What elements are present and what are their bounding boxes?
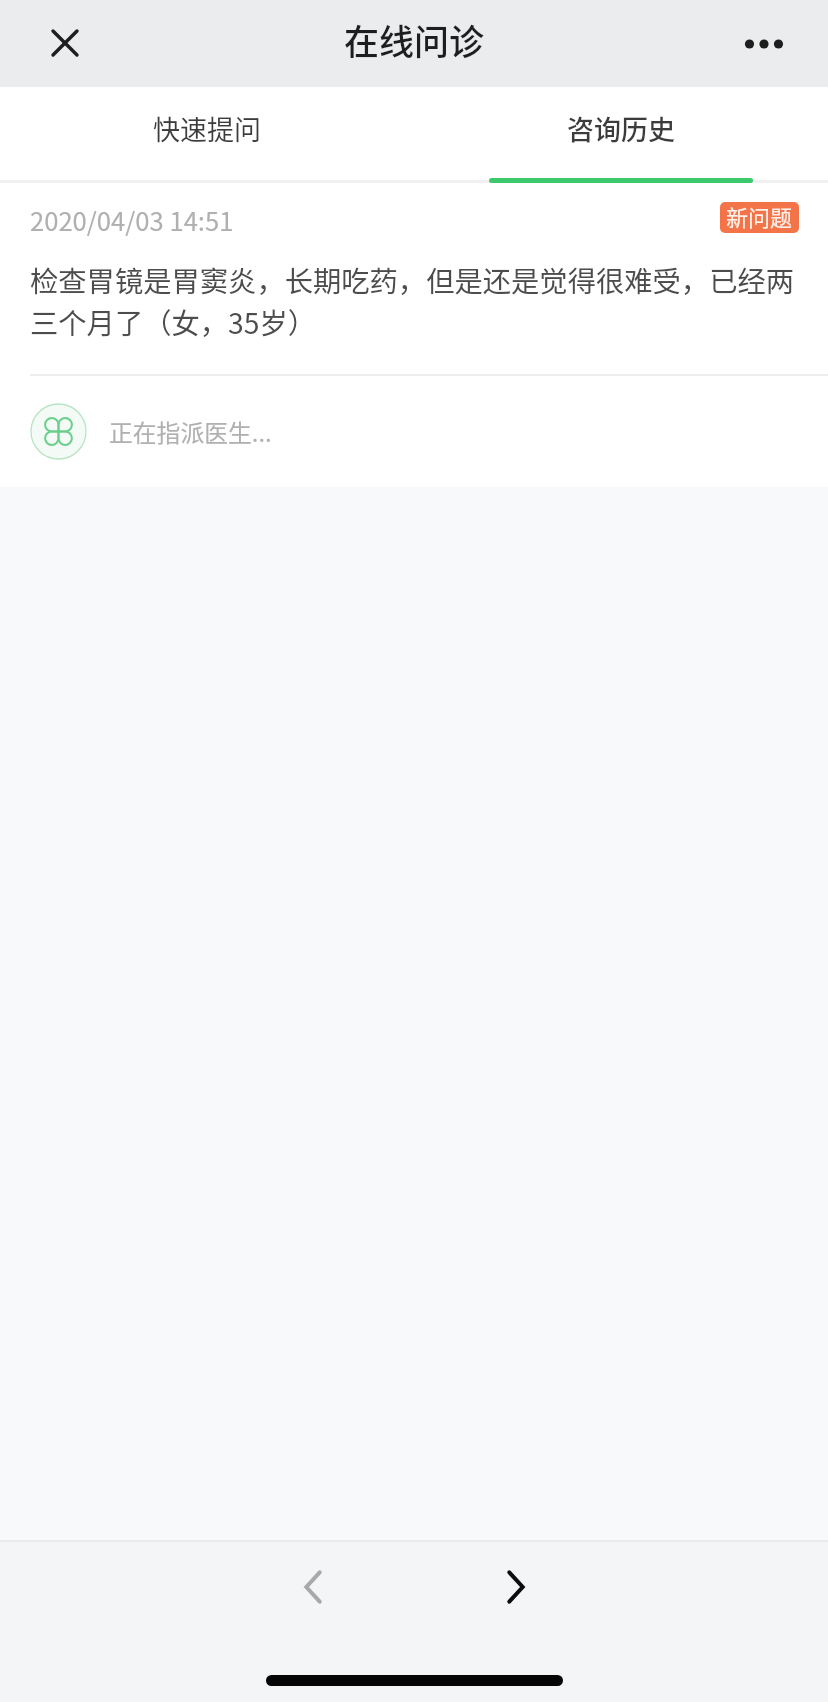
staticText: 新问题 — [726, 202, 793, 231]
button[interactable]: Back — [278, 1552, 348, 1622]
button[interactable]: Forward — [481, 1552, 551, 1622]
staticText: 快速提问 — [153, 109, 261, 148]
button[interactable]: Close — [23, 1, 107, 85]
button[interactable]: 2020/04/03 14:51 — [0, 183, 828, 487]
button[interactable]: 咨询历史 — [414, 87, 828, 183]
staticText: 2020/04/03 14:51 — [30, 201, 234, 238]
button[interactable]: 快速提问 — [0, 87, 414, 183]
staticText: 正在指派医生... — [109, 414, 272, 448]
staticText: 在线问诊 — [344, 14, 485, 65]
button[interactable]: More options — [722, 2, 806, 86]
staticText: 咨询历史 — [567, 109, 675, 148]
staticText: 检查胃镜是胃窦炎，长期吃药，但是还是觉得很难受，已经两三个月了（女，35岁） — [30, 259, 798, 343]
